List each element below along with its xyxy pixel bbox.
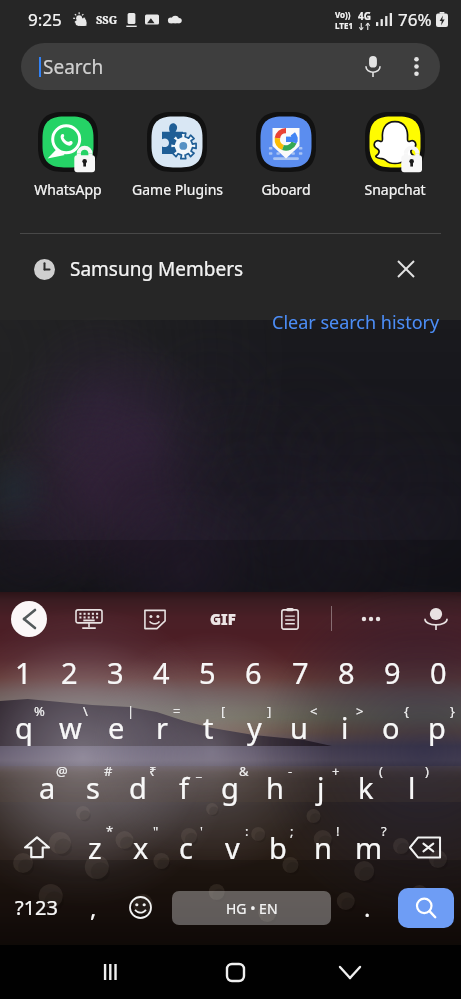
staticText: j (317, 768, 325, 807)
staticText: h (266, 768, 284, 807)
button[interactable]: 1 (0, 649, 46, 695)
button[interactable]: More options (396, 46, 437, 87)
button[interactable]: 4 (138, 649, 184, 695)
staticText: 0 (430, 653, 447, 692)
button[interactable]: g (207, 764, 253, 810)
staticText: u (290, 708, 308, 747)
button[interactable]: HG • EN (172, 891, 331, 925)
button[interactable]: y (231, 704, 277, 750)
button[interactable]: d (115, 764, 161, 810)
staticText: ; (290, 822, 294, 840)
button[interactable]: o (368, 704, 414, 750)
button[interactable]: , (75, 888, 111, 926)
button[interactable]: f (161, 764, 207, 810)
button[interactable]: n (300, 824, 346, 870)
button[interactable]: r (139, 704, 185, 750)
button[interactable]: Samsung Members (0, 241, 461, 297)
button[interactable]: Voice input (416, 599, 456, 639)
staticText: WhatsApp (34, 180, 102, 199)
button[interactable]: k (343, 764, 389, 810)
button[interactable]: Keyboard (69, 599, 109, 639)
staticText: - (288, 762, 293, 780)
button[interactable]: Emoji (122, 888, 158, 926)
button[interactable]: Clipboard (270, 599, 310, 639)
staticText: > (356, 702, 364, 720)
staticText: \ (83, 702, 88, 720)
staticText: @ (56, 762, 68, 780)
button[interactable]: z (72, 824, 118, 870)
button[interactable]: Snapchat (343, 108, 447, 206)
staticText: + (332, 762, 340, 780)
button[interactable]: e (93, 704, 139, 750)
staticText: ( (379, 762, 383, 780)
button[interactable]: q (1, 704, 47, 750)
staticText: l (408, 768, 416, 807)
staticText: p (428, 708, 446, 747)
button[interactable]: h (252, 764, 298, 810)
button[interactable]: t (185, 704, 231, 750)
button[interactable]: Clear search history (250, 303, 440, 341)
button[interactable]: 6 (230, 649, 276, 695)
button[interactable]: Hide keyboard (322, 945, 378, 999)
button[interactable]: Voice search (352, 46, 393, 87)
button[interactable]: v (209, 824, 255, 870)
staticText: 7 (292, 653, 309, 692)
staticText: ₹ (149, 762, 157, 780)
staticText: 9:25 (28, 8, 62, 31)
staticText: % (34, 702, 45, 720)
button[interactable]: 9 (369, 649, 415, 695)
staticText: e (108, 708, 125, 747)
staticText: d (129, 768, 147, 807)
button[interactable]: x (118, 824, 164, 870)
button[interactable]: Home (207, 945, 263, 999)
button[interactable]: Shift (14, 827, 60, 867)
staticText: c (179, 828, 193, 867)
button[interactable]: b (255, 824, 301, 870)
button[interactable]: p (414, 704, 460, 750)
button[interactable]: 0 (415, 649, 461, 695)
button[interactable]: Search (21, 43, 440, 90)
button[interactable]: Delete (402, 828, 448, 866)
button[interactable]: Back (11, 601, 47, 637)
staticText: } (450, 702, 455, 720)
button[interactable]: i (322, 704, 368, 750)
button[interactable]: ?123 (6, 888, 66, 926)
staticText: 3 (107, 653, 124, 692)
staticText: n (314, 828, 332, 867)
staticText: w (59, 708, 82, 747)
staticText: 4 (153, 653, 170, 692)
staticText: v (225, 828, 240, 867)
staticText: f (179, 768, 189, 807)
staticText: LTE1 (335, 20, 353, 31)
button[interactable]: l (389, 764, 435, 810)
button[interactable]: j (298, 764, 344, 810)
button[interactable]: More (351, 599, 391, 639)
button[interactable]: u (276, 704, 322, 750)
button[interactable]: 3 (92, 649, 138, 695)
staticText: k (358, 768, 374, 807)
button[interactable]: Stickers (135, 599, 175, 639)
button[interactable]: GIF (203, 608, 243, 630)
button[interactable]: Gboard (234, 108, 338, 206)
staticText: " (153, 822, 159, 840)
button[interactable]: 7 (277, 649, 323, 695)
staticText: HG • EN (226, 899, 278, 918)
button[interactable]: 5 (184, 649, 230, 695)
button[interactable]: m (346, 824, 392, 870)
button[interactable]: . (349, 888, 385, 926)
button[interactable]: 8 (323, 649, 369, 695)
button[interactable]: WhatsApp (16, 108, 120, 206)
staticText: SSG (96, 12, 118, 27)
button[interactable]: Game Plugins (125, 108, 229, 206)
button[interactable]: Recents (82, 945, 138, 999)
staticText: o (382, 708, 400, 747)
button[interactable]: w (47, 704, 93, 750)
button[interactable]: Search (398, 888, 454, 928)
button[interactable]: 2 (46, 649, 92, 695)
staticText: Game Plugins (132, 180, 223, 199)
staticText: Snapchat (364, 180, 426, 199)
button[interactable]: a (24, 764, 70, 810)
button[interactable]: c (163, 824, 209, 870)
button[interactable]: Remove (384, 247, 428, 291)
button[interactable]: s (70, 764, 116, 810)
